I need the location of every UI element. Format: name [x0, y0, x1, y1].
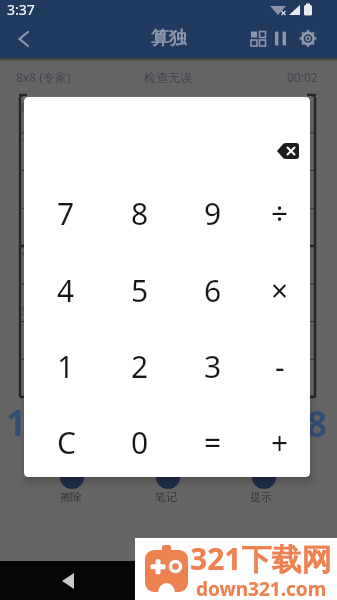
staticText: C: [57, 422, 76, 463]
staticText: 笔记: [155, 490, 177, 504]
button[interactable]: 4: [31, 253, 101, 327]
staticText: 321下载网: [190, 538, 332, 578]
button[interactable]: [46, 561, 90, 600]
button[interactable]: [277, 143, 299, 159]
button[interactable]: 8: [105, 176, 175, 250]
staticText: 1: [6, 399, 27, 443]
button[interactable]: C: [31, 405, 101, 479]
button[interactable]: 7: [31, 176, 101, 250]
button[interactable]: -: [245, 329, 315, 403]
button[interactable]: [303, 400, 331, 444]
staticText: 00:02: [287, 69, 318, 85]
staticText: 3: [204, 346, 222, 387]
staticText: 4: [57, 270, 75, 311]
staticText: 3:37: [7, 0, 35, 19]
button[interactable]: [247, 19, 337, 58]
staticText: 8: [21, 99, 28, 114]
staticText: 1: [57, 346, 75, 387]
button[interactable]: 2: [105, 329, 175, 403]
staticText: 5: [131, 270, 149, 311]
staticText: 6: [204, 270, 222, 311]
staticText: 擦除: [60, 490, 82, 504]
staticText: 7: [57, 193, 75, 234]
staticText: 1: [21, 134, 28, 149]
button[interactable]: 5: [105, 253, 175, 327]
button[interactable]: 1: [31, 329, 101, 403]
staticText: 9: [204, 193, 222, 234]
staticText: ×: [271, 270, 289, 311]
staticText: 8x8 (专家): [16, 69, 71, 85]
staticText: 2: [21, 243, 28, 258]
staticText: 检查无误: [144, 70, 192, 85]
staticText: down321.com: [196, 576, 327, 598]
staticText: -: [275, 346, 285, 387]
button[interactable]: 9: [178, 176, 248, 250]
button[interactable]: [236, 466, 292, 508]
button[interactable]: [2, 399, 30, 443]
staticText: 8: [307, 400, 328, 444]
button[interactable]: 321下载网: [135, 538, 337, 600]
button[interactable]: 3: [178, 329, 248, 403]
staticText: +: [271, 422, 289, 463]
button[interactable]: ×: [245, 253, 315, 327]
staticText: =: [204, 422, 222, 463]
button[interactable]: 6: [178, 253, 248, 327]
button[interactable]: [0, 19, 44, 58]
staticText: 提示: [250, 490, 272, 504]
staticText: 2: [131, 346, 149, 387]
button[interactable]: [44, 466, 100, 508]
button[interactable]: 0: [105, 405, 175, 479]
staticText: 8: [131, 193, 149, 234]
button[interactable]: =: [178, 405, 248, 479]
staticText: ÷: [271, 193, 289, 234]
staticText: 5: [21, 303, 28, 318]
staticText: 0: [131, 422, 149, 463]
button[interactable]: ÷: [245, 176, 315, 250]
staticText: 算独: [151, 27, 187, 50]
button[interactable]: +: [245, 405, 315, 479]
button[interactable]: [140, 466, 196, 508]
